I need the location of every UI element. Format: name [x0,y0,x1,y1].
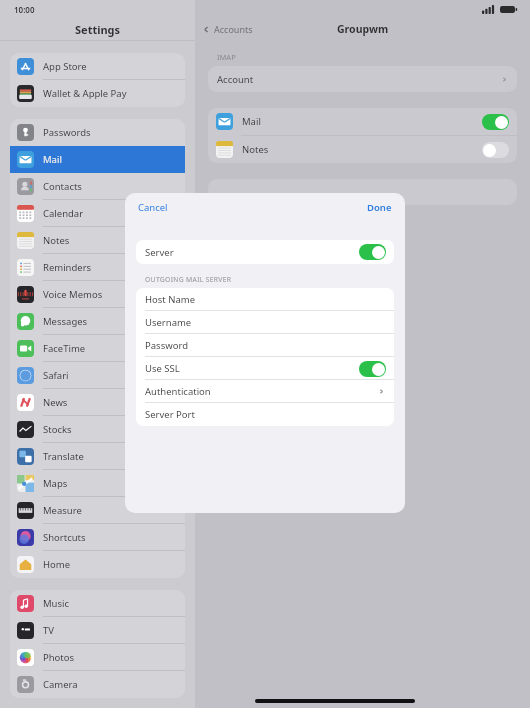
button[interactable]: Reminders [10,254,185,281]
button[interactable]: Shortcuts [10,524,185,551]
staticText: Voice Memos [43,288,103,301]
staticText: Reminders [43,261,92,274]
button[interactable]: Host Name [136,288,394,311]
staticText: OUTGOING MAIL SERVER [145,275,232,284]
staticText: Calendar [43,207,84,220]
button[interactable]: Safari [10,362,185,389]
button[interactable]: Translate [10,443,185,470]
staticText: App Store [43,60,87,73]
button[interactable]: Accounts [202,23,253,35]
button[interactable]: Notes [10,227,185,254]
button[interactable]: Mail [10,146,185,173]
button[interactable]: News [10,389,185,416]
staticText: Accounts [214,23,253,35]
button[interactable]: Wallet & Apple Pay [10,80,185,107]
staticText: FaceTime [43,342,86,355]
staticText: Stocks [43,423,72,436]
button[interactable]: FaceTime [10,335,185,362]
button[interactable]: Measure [10,497,185,524]
staticText: Cancel [138,201,168,214]
staticText: Notes [43,234,70,247]
button[interactable]: Voice Memos [10,281,185,308]
button[interactable]: Notes [208,136,517,163]
staticText: Account [217,73,254,86]
staticText: Passwords [43,126,91,139]
staticText: 10:00 [14,4,35,15]
staticText: Maps [43,477,68,490]
staticText: Measure [43,504,82,517]
button[interactable]: Music [10,590,185,617]
staticText: Username [145,316,192,329]
button[interactable]: Contacts [10,173,185,200]
button[interactable]: Stocks [10,416,185,443]
staticText: Shortcuts [43,531,86,544]
staticText: News [43,396,68,409]
staticText: Settings [75,22,121,37]
button[interactable]: Camera [10,671,185,698]
button[interactable]: Authentication [136,380,394,403]
staticText: TV [43,624,54,637]
button[interactable]: Messages [10,308,185,335]
staticText: Translate [43,450,84,463]
staticText: Notes [242,143,269,156]
staticText: Photos [43,651,75,664]
button[interactable]: Done [367,198,405,217]
staticText: Contacts [43,180,82,193]
staticText: Server [145,246,174,259]
staticText: Done [367,201,392,214]
button[interactable]: Cancel [125,198,168,217]
button[interactable]: Off [482,142,509,158]
button[interactable]: Server Port [136,403,394,426]
staticText: Mail [242,115,261,128]
staticText: Server Port [145,408,195,421]
button[interactable]: Home [10,551,185,578]
staticText: Safari [43,369,69,382]
staticText: Music [43,597,70,610]
staticText: Home [43,558,71,571]
button[interactable]: Username [136,311,394,334]
button[interactable]: Server [136,240,394,264]
button[interactable]: Photos [10,644,185,671]
button[interactable]: Calendar [10,200,185,227]
staticText: Use SSL [145,362,180,375]
button[interactable]: Passwords [10,119,185,146]
staticText: Messages [43,315,88,328]
button[interactable]: Account [208,66,517,92]
staticText: Host Name [145,293,196,306]
staticText: Groupwm [337,22,389,36]
button[interactable]: Mail [208,108,517,135]
button[interactable]: On [359,361,386,377]
button[interactable]: TV [10,617,185,644]
staticText: Mail [43,153,62,166]
button[interactable]: On [482,114,509,130]
button[interactable]: App Store [10,53,185,80]
staticText: Password [145,339,188,352]
button[interactable]: Maps [10,470,185,497]
button[interactable]: Use SSL [136,357,394,380]
button[interactable]: Password [136,334,394,357]
staticText: Authentication [145,385,211,398]
staticText: Wallet & Apple Pay [43,87,127,100]
button[interactable]: On [359,244,386,260]
staticText: Camera [43,678,78,691]
staticText: IMAP [217,52,236,62]
